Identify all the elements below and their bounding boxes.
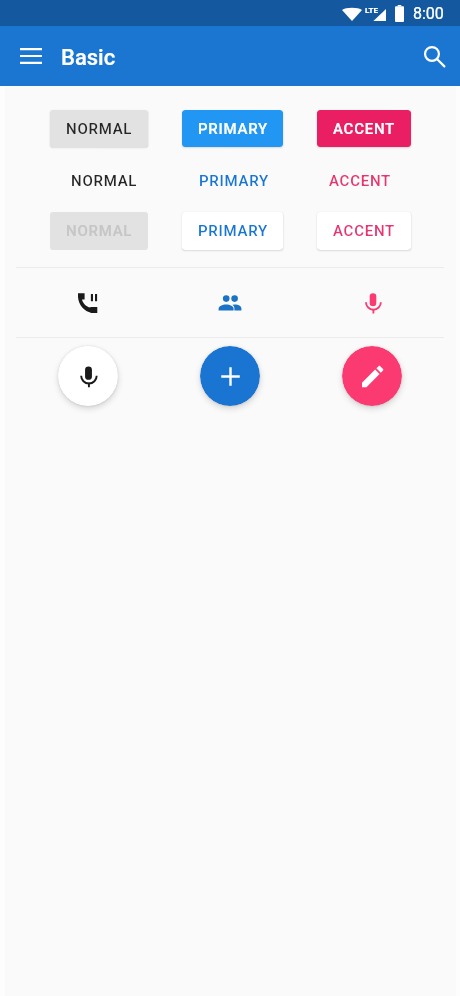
button[interactable]: ACCENT bbox=[323, 163, 396, 199]
staticText: LTE bbox=[365, 6, 378, 15]
button[interactable]: ACCENT bbox=[317, 212, 411, 250]
staticText: PRIMARY bbox=[198, 120, 268, 138]
staticText: NORMAL bbox=[66, 222, 133, 240]
staticText: ACCENT bbox=[333, 120, 395, 138]
staticText: NORMAL bbox=[66, 120, 133, 138]
button[interactable]: PRIMARY bbox=[182, 110, 283, 147]
button[interactable]: NORMAL bbox=[50, 212, 148, 250]
button[interactable]: NORMAL bbox=[65, 163, 144, 199]
button[interactable]: NORMAL bbox=[50, 110, 148, 147]
button[interactable]: Voice input bbox=[58, 346, 118, 406]
staticText: ACCENT bbox=[329, 172, 391, 190]
staticText: ACCENT bbox=[333, 222, 395, 240]
button[interactable]: PRIMARY bbox=[192, 163, 275, 199]
button[interactable]: Add bbox=[200, 346, 260, 406]
button[interactable]: ACCENT bbox=[317, 110, 411, 147]
staticText: Basic bbox=[61, 45, 116, 71]
button[interactable]: Phone paused bbox=[63, 279, 111, 327]
button[interactable]: Contacts bbox=[206, 279, 254, 327]
button[interactable]: Microphone bbox=[349, 279, 397, 327]
button[interactable]: Search bbox=[410, 32, 458, 80]
staticText: PRIMARY bbox=[198, 222, 268, 240]
staticText: PRIMARY bbox=[199, 172, 269, 190]
button[interactable]: Edit bbox=[342, 346, 402, 406]
button[interactable]: PRIMARY bbox=[182, 212, 283, 250]
staticText: 8:00 bbox=[413, 4, 444, 23]
button[interactable]: Open navigation drawer bbox=[8, 33, 54, 79]
staticText: NORMAL bbox=[71, 172, 138, 190]
